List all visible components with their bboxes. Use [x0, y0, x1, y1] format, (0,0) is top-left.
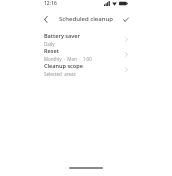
button[interactable]: Back	[41, 14, 51, 24]
staticText: Selected areas	[44, 71, 76, 77]
staticText: 12:16	[44, 0, 57, 7]
button[interactable]: Battery saver	[0, 32, 172, 47]
staticText: Scheduled cleanup	[59, 15, 113, 23]
staticText: Daily	[44, 41, 55, 47]
button[interactable]: Cleanup scope	[0, 62, 172, 77]
button[interactable]: Confirm	[121, 14, 131, 24]
staticText: Battery saver	[44, 32, 80, 39]
staticText: Cleanup scope	[44, 62, 83, 69]
button[interactable]: Reset	[0, 47, 172, 62]
staticText: Reset	[44, 47, 59, 54]
staticText: Monthly · Mon · 1:00	[44, 56, 92, 62]
